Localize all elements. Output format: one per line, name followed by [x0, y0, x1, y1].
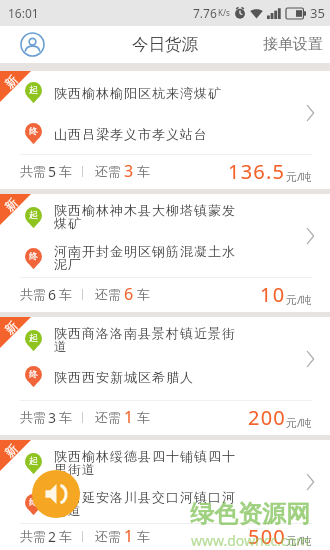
staticText: 500 [248, 523, 286, 549]
staticText: 200 [248, 404, 286, 431]
staticText: 陕西延安洛川县交口河镇口河街道 [54, 489, 244, 519]
staticText: 终 [29, 496, 38, 507]
staticText: 元/吨 [286, 533, 313, 548]
staticText: 车 [137, 163, 150, 179]
staticText: 起 [29, 84, 38, 95]
staticText: 3 [124, 160, 134, 182]
staticText: 6 [48, 285, 57, 304]
staticText: 绿色资源网 [190, 499, 310, 529]
staticText: 终 [29, 125, 38, 136]
button[interactable]: 接单设置 [263, 35, 323, 54]
staticText: 共需 [20, 163, 46, 179]
staticText: 今日货源 [132, 34, 198, 55]
staticText: 新 [1, 318, 21, 337]
staticText: 3 [48, 408, 57, 427]
staticText: 6 [124, 283, 134, 305]
staticText: 元/吨 [286, 169, 313, 184]
staticText: 还需 [95, 286, 121, 302]
staticText: 2 [48, 527, 57, 546]
staticText: 元/吨 [286, 415, 313, 430]
staticText: 元/吨 [286, 292, 313, 307]
staticText: 车 [59, 528, 72, 544]
staticText: K/s [218, 7, 230, 18]
staticText: 陕西榆林榆阳区杭来湾煤矿 [54, 85, 244, 101]
staticText: 还需 [95, 528, 121, 544]
staticText: 35 [310, 4, 325, 22]
staticText: 车 [137, 409, 150, 425]
button[interactable]: 起 [0, 71, 330, 189]
staticText: 还需 [95, 163, 121, 179]
staticText: 起 [29, 332, 38, 343]
staticText: 10 [260, 281, 286, 308]
staticText: 1 [124, 406, 134, 428]
staticText: 共需 [20, 528, 46, 544]
staticText: 共需 [20, 409, 46, 425]
staticText: 还需 [95, 409, 121, 425]
staticText: 新 [1, 441, 21, 460]
staticText: 5 [48, 162, 57, 181]
staticText: 16:01 [8, 5, 39, 21]
staticText: 终 [29, 250, 38, 261]
staticText: 136.5 [228, 158, 286, 185]
staticText: 共需 [20, 286, 46, 302]
staticText: 车 [59, 286, 72, 302]
staticText: 河南开封金明区钢筋混凝土水泥厂 [54, 243, 244, 273]
staticText: 车 [137, 286, 150, 302]
staticText: 车 [137, 528, 150, 544]
staticText: 起 [29, 455, 38, 466]
staticText: 陕西西安新城区希腊人 [54, 369, 244, 385]
staticText: 终 [29, 368, 38, 379]
staticText: 车 [59, 409, 72, 425]
staticText: 新 [1, 72, 21, 91]
staticText: 山西吕梁孝义市孝义站台 [54, 126, 244, 142]
staticText: 1 [124, 525, 134, 547]
staticText: 陕西榆林神木县大柳塔镇蒙发煤矿 [54, 202, 244, 232]
button[interactable]: 起 [0, 194, 330, 312]
button[interactable]: 个人中心 [20, 32, 45, 57]
staticText: 7.76 [193, 5, 217, 21]
button[interactable]: 起 [0, 440, 330, 550]
staticText: 陕西商洛洛南县景村镇近景街道 [54, 325, 244, 355]
staticText: 新 [1, 195, 21, 214]
staticText: 起 [29, 209, 38, 220]
staticText: 车 [59, 163, 72, 179]
button[interactable]: 语音播报 [32, 470, 80, 518]
button[interactable]: 起 [0, 317, 330, 435]
staticText: www.downcc.com [191, 531, 310, 550]
staticText: 陕西榆林绥德县四十铺镇四十里街道 [54, 448, 244, 478]
